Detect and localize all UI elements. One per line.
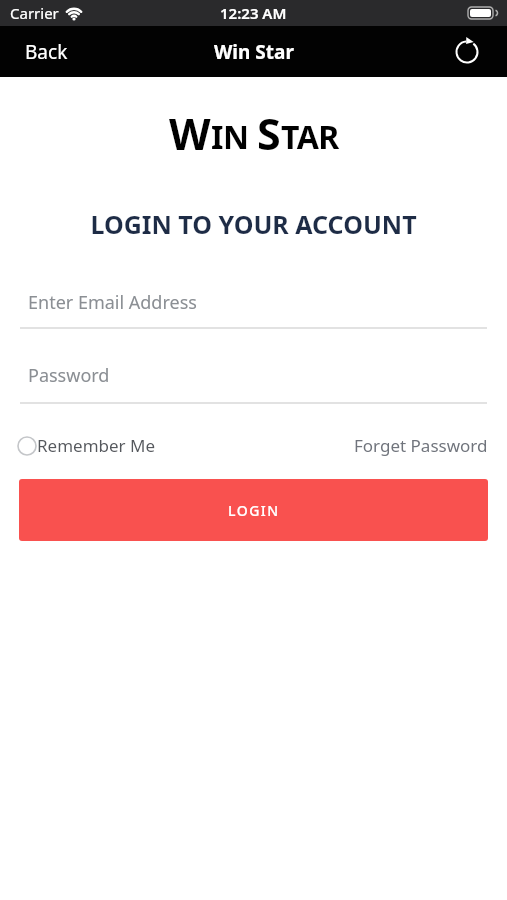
button[interactable]: Forget Password bbox=[354, 434, 488, 457]
staticText: Password bbox=[28, 363, 110, 388]
staticText: W bbox=[169, 104, 211, 163]
button[interactable]: LOGIN bbox=[19, 479, 488, 541]
staticText: LOGIN TO YOUR ACCOUNT bbox=[0, 207, 507, 241]
button[interactable]: Enter Email Address bbox=[0, 290, 507, 329]
staticText: LOGIN bbox=[228, 501, 280, 520]
staticText: Enter Email Address bbox=[28, 290, 197, 315]
button[interactable]: Remember Me bbox=[17, 434, 156, 457]
button[interactable] bbox=[455, 40, 507, 64]
staticText: Back bbox=[25, 39, 68, 65]
staticText: TAR bbox=[281, 115, 339, 159]
staticText: 12:23 AM bbox=[220, 3, 287, 23]
button[interactable]: Back bbox=[0, 31, 93, 73]
button[interactable]: Password bbox=[0, 363, 507, 404]
staticText: S bbox=[257, 104, 281, 163]
staticText: IN bbox=[211, 115, 249, 159]
staticText: Remember Me bbox=[37, 434, 156, 457]
staticText: Forget Password bbox=[354, 434, 488, 457]
staticText: Carrier bbox=[10, 3, 59, 23]
staticText: Win Star bbox=[214, 39, 294, 65]
